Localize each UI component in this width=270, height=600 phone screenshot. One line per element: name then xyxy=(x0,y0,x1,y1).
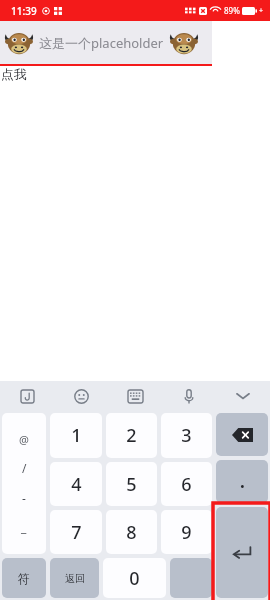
staticText: . xyxy=(240,470,245,493)
button[interactable]: . xyxy=(216,460,268,503)
button[interactable]: 点我 xyxy=(1,66,27,82)
button[interactable]: 2 xyxy=(106,413,157,458)
staticText: @ xyxy=(19,432,29,447)
button[interactable]: 7 xyxy=(50,510,102,554)
staticText: - xyxy=(22,490,26,506)
staticText: 11:39 xyxy=(11,4,37,18)
button[interactable]: Keyboard layout xyxy=(108,381,162,411)
button[interactable]: Backspace xyxy=(216,413,268,456)
button[interactable]: 符 xyxy=(2,558,46,598)
staticText: 1 xyxy=(71,423,82,448)
staticText: 7 xyxy=(71,520,82,545)
button[interactable]: Emoji xyxy=(54,381,108,411)
staticText: 3 xyxy=(181,423,192,448)
button[interactable]: Symbols xyxy=(2,413,46,554)
button[interactable]: 0 xyxy=(103,558,166,598)
button[interactable]: Input method xyxy=(0,381,54,411)
button[interactable]: Space xyxy=(170,558,212,598)
button[interactable]: 4 xyxy=(50,462,102,506)
staticText: 89% xyxy=(224,5,240,16)
staticText: 2 xyxy=(126,423,137,448)
staticText: + xyxy=(259,6,264,16)
staticText: 8 xyxy=(126,520,137,545)
staticText: 这是一个placeholder xyxy=(39,34,164,52)
staticText: 5 xyxy=(126,472,137,497)
staticText: 4 xyxy=(71,472,82,497)
staticText: 9 xyxy=(181,520,192,545)
button[interactable]: 6 xyxy=(161,462,212,506)
button[interactable]: 9 xyxy=(161,510,212,554)
button[interactable]: 3 xyxy=(161,413,212,458)
staticText: 0 xyxy=(129,566,140,591)
staticText: / xyxy=(22,460,27,476)
staticText: _ xyxy=(21,519,27,535)
button[interactable]: Enter xyxy=(216,507,268,598)
button[interactable]: 返回 xyxy=(50,558,99,598)
button[interactable]: 1 xyxy=(50,413,102,458)
staticText: 符 xyxy=(18,571,30,586)
staticText: 返回 xyxy=(65,572,85,585)
button[interactable]: Hide keyboard xyxy=(216,381,270,411)
staticText: 点我 xyxy=(1,66,27,82)
button[interactable]: 这是一个placeholder xyxy=(0,21,212,64)
button[interactable]: Voice input xyxy=(162,381,216,411)
button[interactable]: 5 xyxy=(106,462,157,506)
button[interactable]: 8 xyxy=(106,510,157,554)
staticText: 6 xyxy=(181,472,192,497)
